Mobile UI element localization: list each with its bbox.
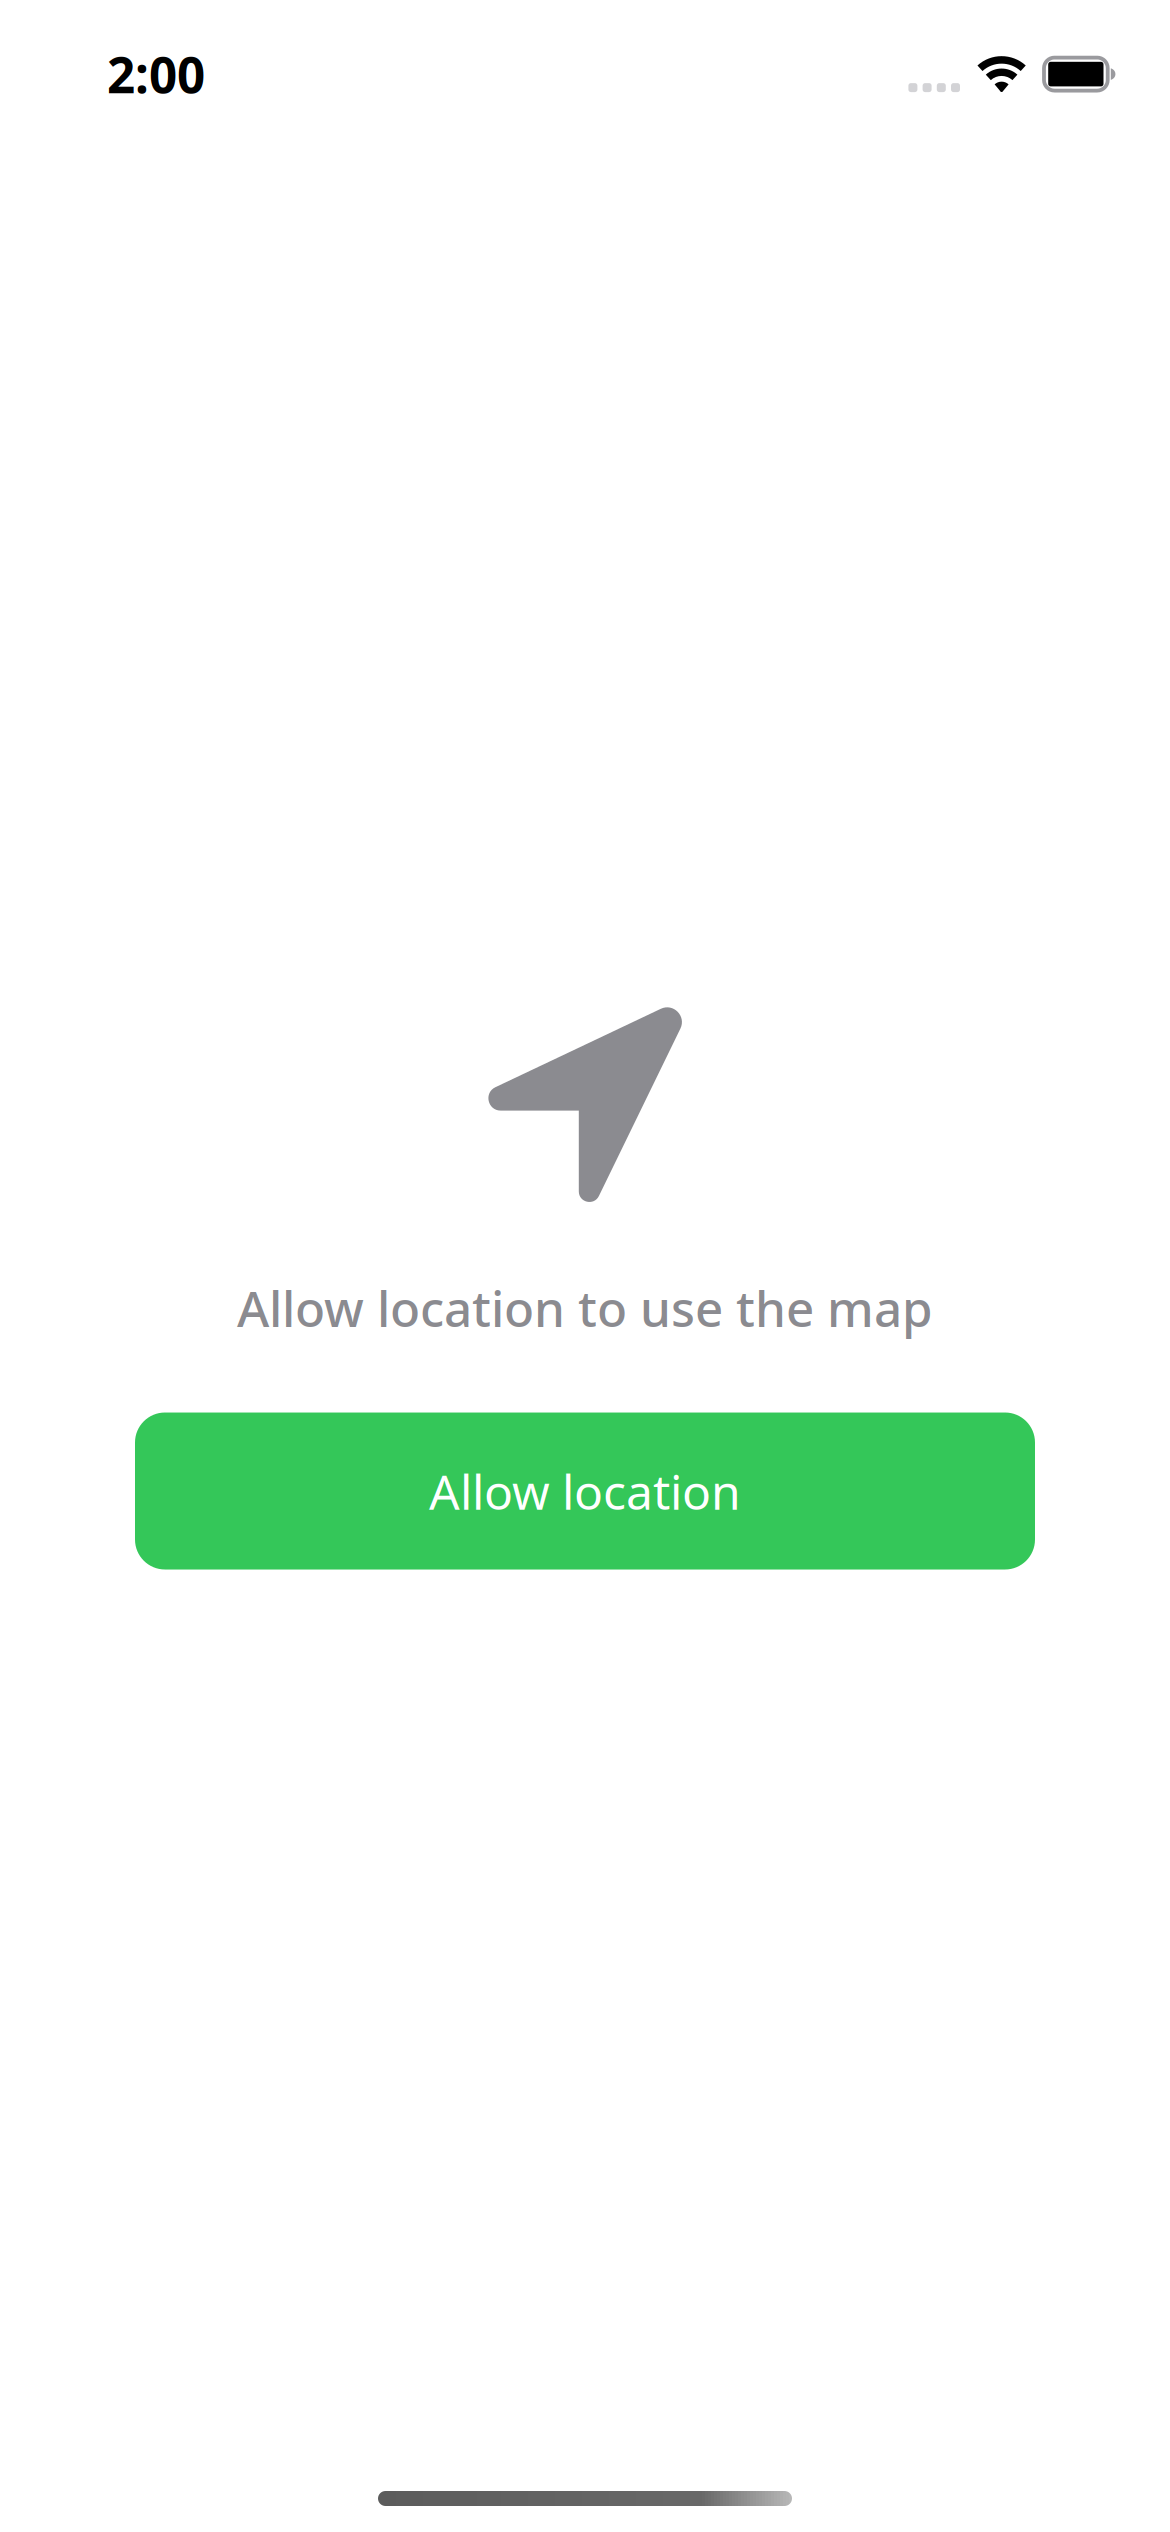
staticText: Allow location to use the map (237, 1275, 933, 1340)
button[interactable]: Allow location (135, 1412, 1035, 1569)
staticText: 2:00 (107, 41, 205, 107)
staticText: Allow location (429, 1459, 741, 1523)
